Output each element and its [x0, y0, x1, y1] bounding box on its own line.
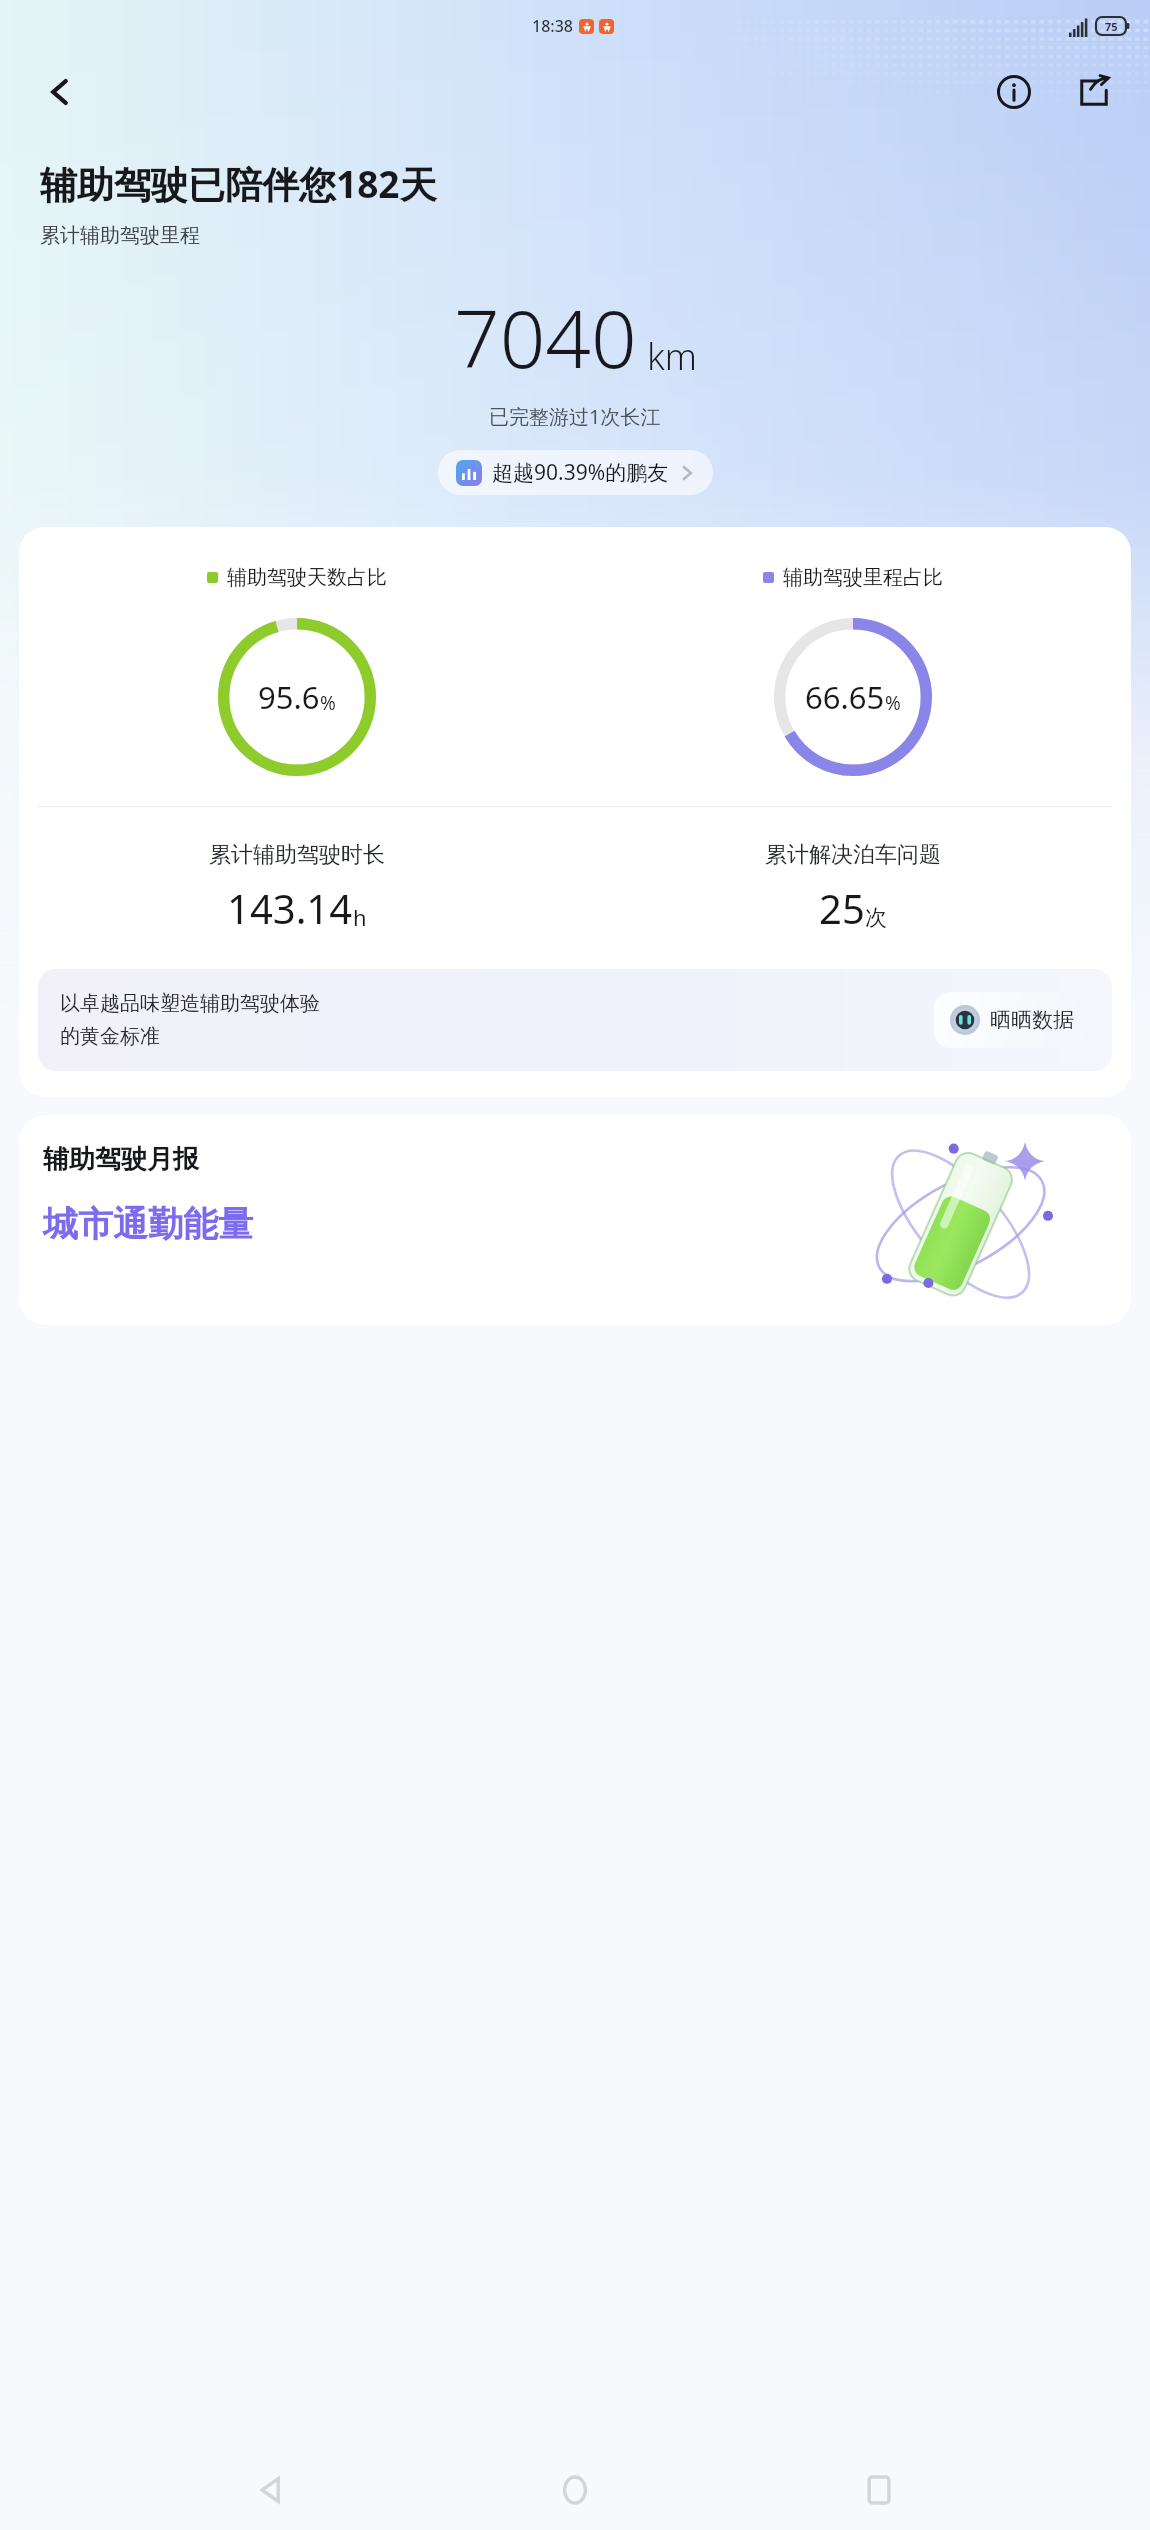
staticText: 次	[865, 904, 887, 932]
button[interactable]: Home	[543, 2458, 607, 2522]
staticText: 以卓越品味塑造辅助驾驶体验	[60, 991, 320, 1016]
staticText: h	[353, 902, 367, 932]
staticText: 95.6	[258, 676, 320, 718]
staticText: 的黄金标准	[60, 1024, 160, 1049]
button[interactable]: 晒晒数据	[934, 992, 1090, 1048]
staticText: 25	[819, 881, 865, 935]
staticText: 已完整游过1次长江	[489, 403, 661, 430]
staticText: 辅助驾驶里程占比	[783, 565, 943, 590]
staticText: 累计辅助驾驶里程	[40, 223, 200, 248]
button[interactable]: Back	[240, 2458, 304, 2522]
staticText: 辅助驾驶月报	[43, 1143, 199, 1176]
staticText: 辅助驾驶天数占比	[227, 565, 387, 590]
staticText: 城市通勤能量	[43, 1202, 253, 1246]
staticText: 超越90.39%的鹏友	[492, 458, 669, 487]
button[interactable]: Back	[34, 66, 86, 118]
staticText: 66.65	[805, 676, 885, 718]
staticText: 累计解决泊车问题	[765, 841, 941, 869]
staticText: 累计辅助驾驶时长	[209, 841, 385, 869]
staticText: 7040	[454, 282, 637, 391]
staticText: 晒晒数据	[990, 1007, 1074, 1033]
button[interactable]: Recents	[847, 2458, 911, 2522]
button[interactable]: Share	[1066, 64, 1122, 120]
staticText: 143.14	[227, 881, 353, 935]
staticText: 18:38	[532, 15, 573, 37]
staticText: km	[647, 332, 697, 381]
staticText: 辅助驾驶已陪伴您182天	[40, 158, 437, 209]
staticText: 75	[1105, 19, 1118, 34]
staticText: %	[320, 690, 336, 716]
staticText: %	[885, 690, 901, 716]
button[interactable]: Info	[986, 64, 1042, 120]
button[interactable]: 辅助驾驶月报	[19, 1115, 1131, 1325]
button[interactable]: 超越90.39%的鹏友	[438, 450, 713, 495]
